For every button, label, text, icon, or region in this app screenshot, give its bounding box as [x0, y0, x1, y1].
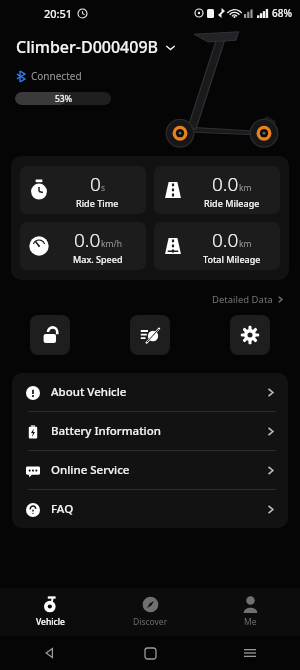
- button[interactable]: Battery Information: [12, 412, 288, 450]
- staticText: Me: [244, 616, 257, 628]
- staticText: 0.0: [74, 227, 101, 253]
- staticText: 68%: [272, 6, 292, 20]
- staticText: Ride Time: [76, 197, 119, 209]
- button[interactable]: About Vehicle: [12, 373, 288, 411]
- button[interactable]: Climber-D000409B: [14, 34, 178, 60]
- button[interactable]: Vehicle: [0, 588, 100, 636]
- button[interactable]: Cruise control: [130, 315, 170, 355]
- staticText: Battery Information: [51, 423, 161, 439]
- staticText: s: [101, 182, 106, 194]
- staticText: Detailed Data: [212, 293, 273, 306]
- button[interactable]: 0.0: [154, 166, 280, 214]
- button[interactable]: 0: [20, 166, 146, 214]
- staticText: Ride Mileage: [204, 197, 260, 209]
- button[interactable]: Lock: [30, 315, 70, 355]
- staticText: Connected: [31, 69, 82, 83]
- button[interactable]: Settings: [230, 315, 270, 355]
- button[interactable]: Detailed Data: [208, 290, 288, 309]
- staticText: FAQ: [51, 501, 74, 517]
- button[interactable]: Back: [0, 636, 100, 670]
- button[interactable]: 0.0: [154, 222, 280, 270]
- button[interactable]: Recent apps: [200, 636, 300, 670]
- staticText: Online Service: [51, 462, 130, 478]
- button[interactable]: FAQ: [12, 490, 288, 528]
- staticText: 0.0: [212, 227, 239, 253]
- button[interactable]: 0.0: [20, 222, 146, 270]
- staticText: Max. Speed: [73, 253, 123, 265]
- button[interactable]: Home: [100, 636, 200, 670]
- staticText: Discover: [133, 616, 168, 628]
- staticText: 53%: [55, 93, 72, 105]
- button[interactable]: Me: [200, 588, 300, 636]
- button[interactable]: Discover: [100, 588, 200, 636]
- staticText: Total Mileage: [203, 253, 261, 265]
- staticText: 0.0: [212, 171, 239, 197]
- staticText: km: [239, 238, 252, 250]
- staticText: Climber-D000409B: [16, 36, 159, 58]
- staticText: km: [239, 182, 252, 194]
- staticText: 0: [90, 171, 101, 197]
- staticText: About Vehicle: [51, 384, 127, 400]
- staticText: Vehicle: [36, 616, 65, 628]
- button[interactable]: Online Service: [12, 451, 288, 489]
- staticText: 20:51: [44, 6, 73, 21]
- staticText: km/h: [101, 238, 122, 250]
